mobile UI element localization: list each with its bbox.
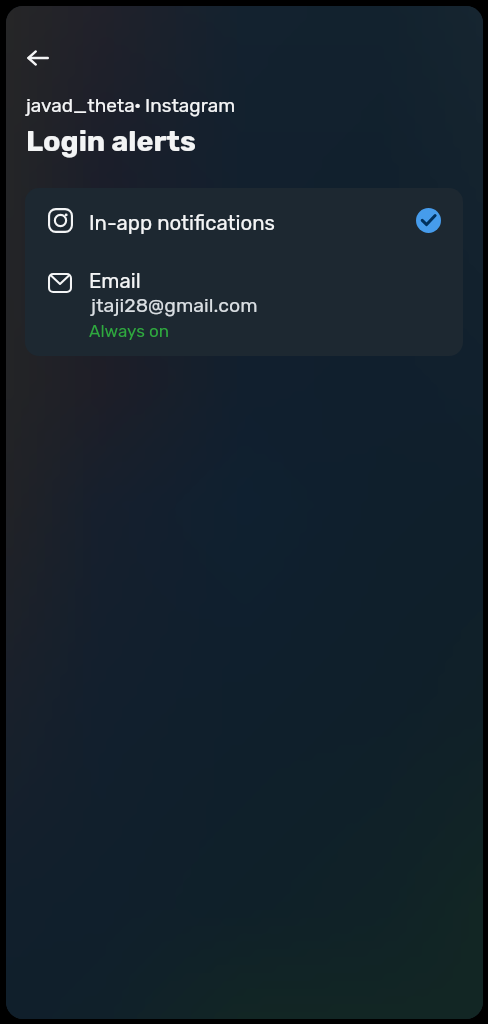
button[interactable]: Back [14, 34, 62, 82]
staticText: In-app notifications [89, 211, 275, 235]
staticText: Login alerts [26, 124, 196, 158]
staticText: Instagram [145, 94, 236, 117]
staticText: javad_theta [26, 94, 135, 117]
button[interactable] [25, 188, 463, 253]
staticText: Always on [89, 321, 170, 341]
staticText: jtaji28@gmail.com [91, 294, 258, 317]
staticText: • [134, 94, 142, 117]
staticText: Email [89, 269, 141, 293]
button[interactable] [25, 253, 463, 356]
